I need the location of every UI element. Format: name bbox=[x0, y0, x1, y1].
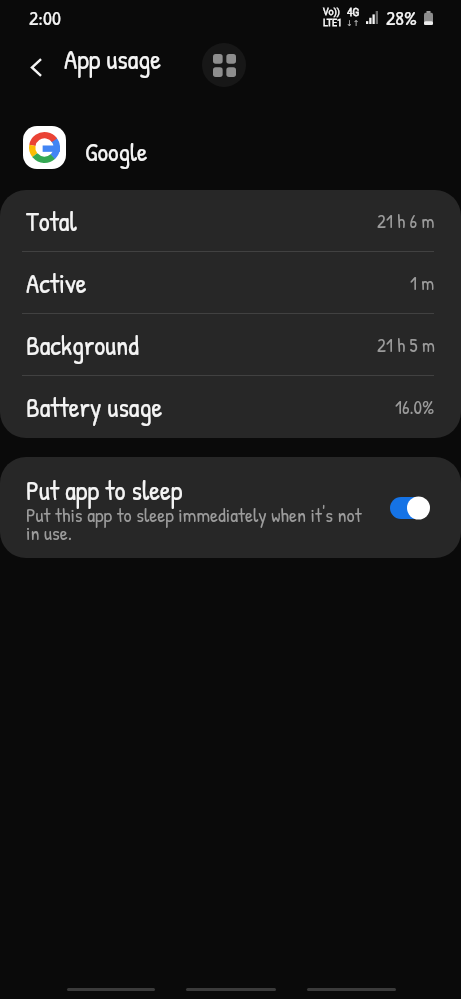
button[interactable]: Background bbox=[0, 314, 461, 376]
staticText: 28% bbox=[386, 4, 417, 31]
staticText: 4G bbox=[347, 7, 360, 19]
staticText: Put this app to sleep immediately when i… bbox=[26, 501, 370, 546]
staticText: 2:00 bbox=[29, 4, 61, 31]
staticText: 16.0% bbox=[395, 394, 435, 420]
staticText: Background bbox=[26, 327, 139, 364]
button[interactable]: Put app to sleep bbox=[0, 457, 461, 558]
staticText: 21 h 5 m bbox=[377, 332, 435, 358]
button[interactable]: Put app to sleep toggle bbox=[386, 494, 430, 522]
staticText: 1 m bbox=[410, 270, 435, 296]
staticText: Total bbox=[26, 203, 77, 240]
staticText: 21 h 6 m bbox=[377, 208, 435, 234]
staticText: ↓↑ bbox=[346, 19, 360, 28]
staticText: Active bbox=[26, 265, 87, 302]
button[interactable]: Battery usage bbox=[0, 376, 461, 438]
button[interactable]: Navigate up bbox=[14, 45, 58, 89]
staticText: LTE1 bbox=[323, 18, 343, 29]
button[interactable]: Total bbox=[0, 190, 461, 252]
staticText: Vo)) bbox=[323, 7, 340, 18]
button[interactable]: Active bbox=[0, 252, 461, 314]
staticText: Battery usage bbox=[26, 389, 163, 426]
button[interactable]: App list bbox=[202, 43, 246, 87]
staticText: Google bbox=[85, 134, 148, 169]
staticText: App usage bbox=[64, 41, 162, 78]
staticText: Put app to sleep bbox=[26, 472, 183, 509]
